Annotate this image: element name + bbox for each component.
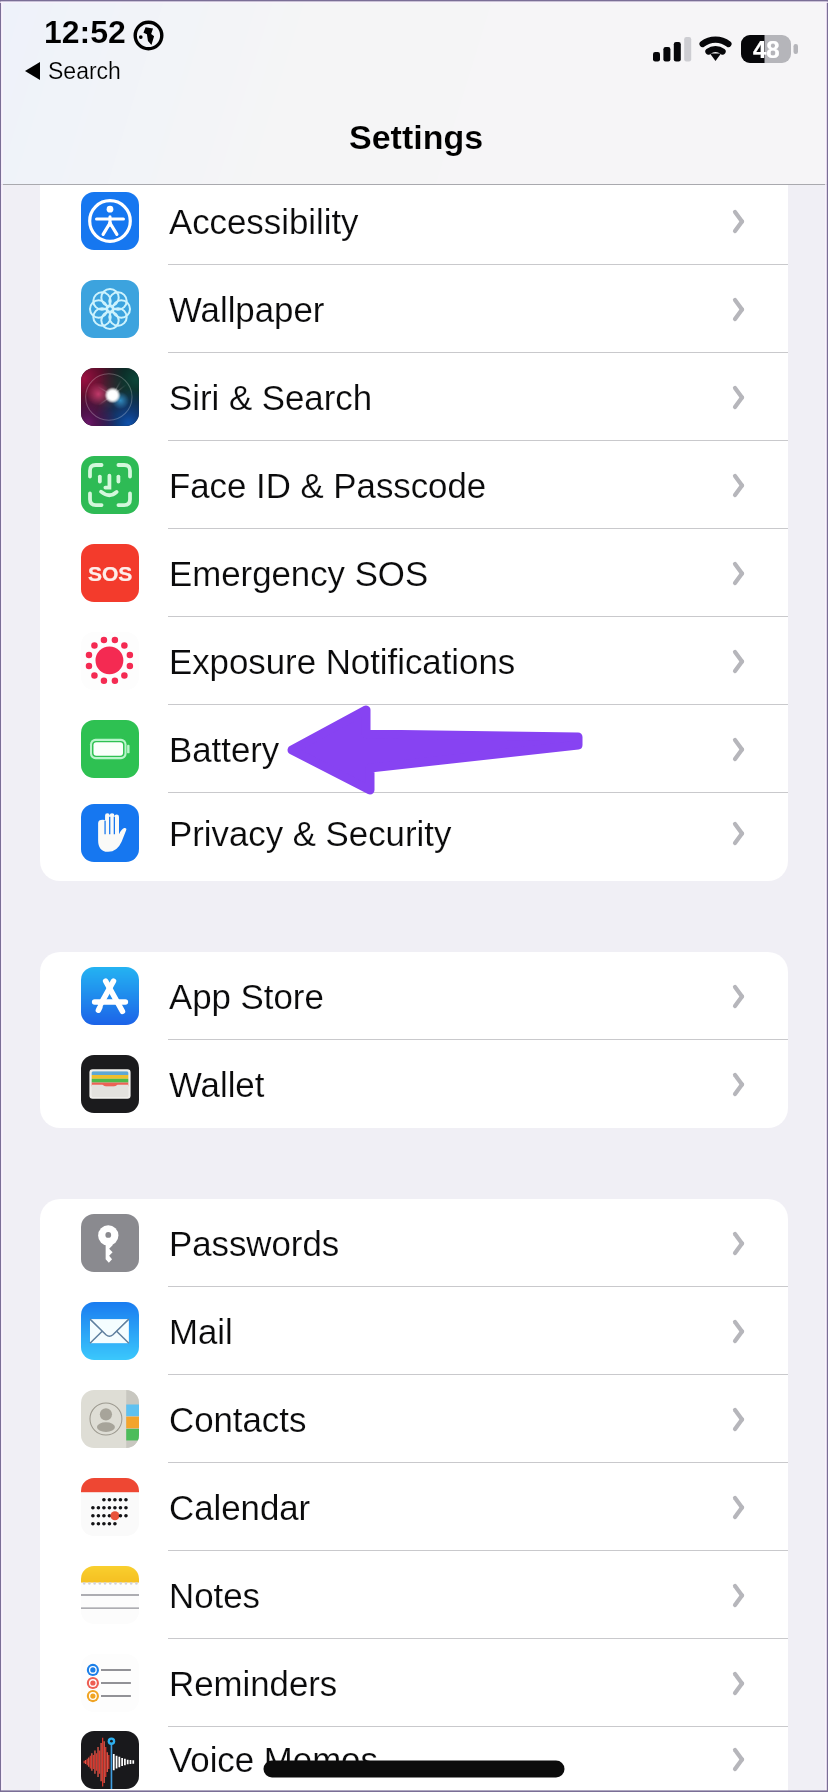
staticText: Reminders bbox=[169, 1664, 338, 1703]
button[interactable]: Privacy & Security bbox=[40, 793, 788, 873]
button[interactable]: App Store bbox=[40, 952, 788, 1040]
staticText: Wallpaper bbox=[169, 290, 325, 329]
button[interactable]: Passwords bbox=[40, 1199, 788, 1287]
staticText: Siri & Search bbox=[169, 378, 373, 417]
button[interactable]: Accessibility bbox=[40, 185, 788, 265]
staticText: 12:52 bbox=[44, 14, 126, 50]
button[interactable]: Notes bbox=[40, 1551, 788, 1639]
button[interactable]: Reminders bbox=[40, 1639, 788, 1727]
staticText: Contacts bbox=[169, 1400, 307, 1439]
staticText: Wallet bbox=[169, 1065, 265, 1104]
button[interactable]: Wallpaper bbox=[40, 265, 788, 353]
staticText: App Store bbox=[169, 977, 324, 1016]
button[interactable]: Battery bbox=[40, 705, 788, 793]
staticText: Calendar bbox=[169, 1488, 311, 1527]
staticText: Search bbox=[48, 58, 121, 84]
staticText: Settings bbox=[349, 118, 484, 156]
staticText: Exposure Notifications bbox=[169, 642, 516, 681]
staticText: 48 bbox=[753, 36, 780, 63]
button[interactable]: Exposure Notifications bbox=[40, 617, 788, 705]
staticText: Passwords bbox=[169, 1224, 340, 1263]
button[interactable]: SOS bbox=[40, 529, 788, 617]
button[interactable]: Contacts bbox=[40, 1375, 788, 1463]
button[interactable]: Wallet bbox=[40, 1040, 788, 1128]
staticText: Accessibility bbox=[169, 202, 359, 241]
staticText: Privacy & Security bbox=[169, 814, 452, 853]
button[interactable]: Voice Memos bbox=[40, 1727, 788, 1792]
button[interactable]: Siri & Search bbox=[40, 353, 788, 441]
staticText: SOS bbox=[88, 562, 133, 585]
staticText: Face ID & Passcode bbox=[169, 466, 487, 505]
staticText: Mail bbox=[169, 1312, 233, 1351]
staticText: Battery bbox=[169, 730, 280, 769]
staticText: Emergency SOS bbox=[169, 554, 429, 593]
staticText: Notes bbox=[169, 1576, 260, 1615]
button[interactable]: Mail bbox=[40, 1287, 788, 1375]
button[interactable]: Search bbox=[24, 58, 121, 84]
button[interactable]: Calendar bbox=[40, 1463, 788, 1551]
staticText: Voice Memos bbox=[169, 1740, 378, 1779]
button[interactable]: Face ID & Passcode bbox=[40, 441, 788, 529]
